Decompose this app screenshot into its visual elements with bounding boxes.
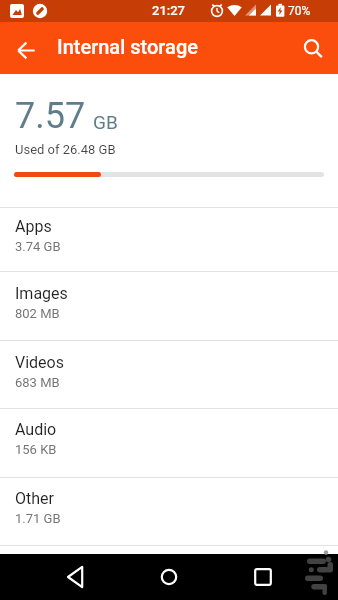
staticText: 802 MB <box>15 306 60 321</box>
staticText: 683 MB <box>15 375 60 390</box>
staticText: Used of 26.48 GB <box>15 142 116 157</box>
staticText: Videos <box>15 353 64 372</box>
staticText: 70% <box>288 4 311 18</box>
staticText: 7.57 <box>15 95 86 137</box>
button[interactable] <box>149 557 189 597</box>
staticText: Internal storage <box>57 35 198 58</box>
staticText: 3.74 GB <box>15 239 61 254</box>
button[interactable]: Apps <box>0 208 338 271</box>
staticText: Apps <box>15 217 52 236</box>
button[interactable] <box>55 557 95 597</box>
button[interactable]: Audio <box>0 409 338 477</box>
staticText: 21:27 <box>152 3 186 18</box>
staticText: Images <box>15 284 68 303</box>
button[interactable]: Other <box>0 478 338 545</box>
button[interactable] <box>243 557 283 597</box>
staticText: 156 KB <box>15 442 57 457</box>
button[interactable]: Videos <box>0 341 338 408</box>
button[interactable] <box>8 30 44 66</box>
staticText: Other <box>15 489 54 508</box>
staticText: GB <box>93 111 118 133</box>
button[interactable]: Images <box>0 272 338 340</box>
staticText: Audio <box>15 420 57 439</box>
button[interactable] <box>293 30 329 66</box>
staticText: 1.71 GB <box>15 511 61 526</box>
